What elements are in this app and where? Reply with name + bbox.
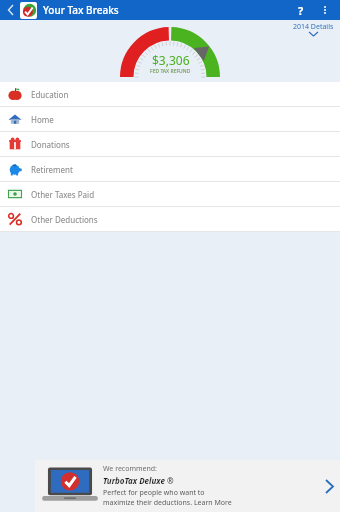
button[interactable]: More options [316, 1, 334, 19]
staticText: Education [31, 89, 69, 100]
staticText: ? [298, 3, 304, 18]
button[interactable]: Help [292, 1, 310, 19]
staticText: $3,306 [152, 52, 190, 68]
staticText: FED TAX REFUND [150, 68, 191, 75]
button[interactable]: Open offer [318, 460, 340, 512]
button[interactable]: We recommend: [35, 460, 340, 512]
button[interactable]: Education [0, 82, 340, 106]
staticText: Home [31, 114, 54, 125]
button[interactable]: Back [2, 1, 20, 19]
button[interactable]: Donations [0, 132, 340, 156]
staticText: maximize their deductions. Learn More [103, 498, 232, 508]
staticText: Other Deductions [31, 214, 98, 225]
staticText: Donations [31, 139, 70, 150]
button[interactable]: Home [0, 107, 340, 131]
staticText: Other Taxes Paid [31, 189, 95, 200]
staticText: TurboTax Deluxe ® [103, 475, 174, 486]
button[interactable]: Retirement [0, 157, 340, 181]
staticText: Your Tax Breaks [43, 3, 119, 17]
staticText: We recommend: [103, 464, 157, 474]
staticText: Perfect for people who want to [103, 488, 205, 498]
button[interactable]: 2014 Details [293, 22, 334, 36]
button[interactable]: Other Taxes Paid [0, 182, 340, 206]
staticText: Retirement [31, 164, 73, 175]
button[interactable]: Other Deductions [0, 207, 340, 231]
staticText: 2014 Details [293, 22, 334, 32]
